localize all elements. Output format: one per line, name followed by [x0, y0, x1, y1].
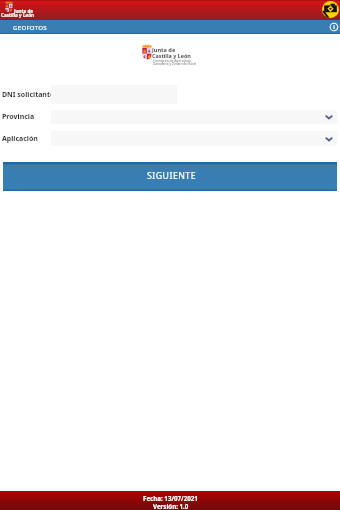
button[interactable]: Take photo: [322, 1, 339, 18]
staticText: Versión: 1.0: [153, 502, 189, 510]
staticText: Fecha: 13/07/2021: [143, 494, 198, 502]
staticText: Ganadería y Desarrollo Rural: [153, 62, 196, 66]
button[interactable]: SIGUIENTE: [3, 162, 337, 191]
staticText: Aplicación: [2, 134, 38, 144]
staticText: Castilla y León: [152, 52, 191, 59]
staticText: Junta de: [152, 46, 176, 54]
button[interactable]: [51, 110, 337, 124]
staticText: DNI solicitante: [2, 90, 55, 100]
staticText: Castilla y León: [1, 12, 35, 18]
staticText: Provincia: [2, 112, 35, 122]
button[interactable]: Information: [328, 21, 340, 33]
staticText: GEOFOTOS: [13, 23, 47, 31]
staticText: Consejería de Agricultura,: [153, 59, 192, 63]
staticText: SIGUIENTE: [147, 170, 197, 182]
button[interactable]: [51, 131, 337, 146]
staticText: Junta de: [14, 8, 34, 14]
